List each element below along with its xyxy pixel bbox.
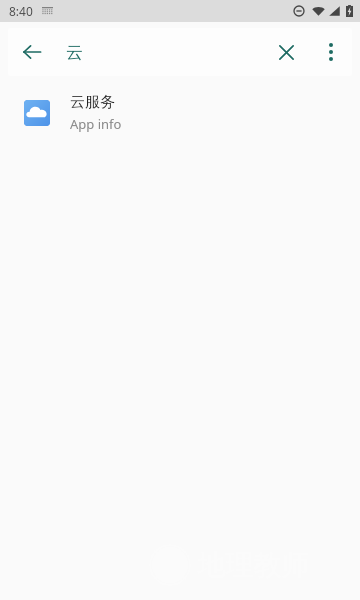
button[interactable]: 云服务 xyxy=(0,86,360,140)
staticText: 云 xyxy=(66,42,83,63)
staticText: 云服务 xyxy=(70,93,115,112)
button[interactable]: 云 xyxy=(56,28,262,76)
staticText: 8:40 xyxy=(9,3,33,19)
button[interactable]: Clear search xyxy=(262,28,310,76)
staticText: App info xyxy=(70,115,122,133)
button[interactable]: Back xyxy=(8,28,56,76)
button[interactable]: More options xyxy=(310,31,352,73)
